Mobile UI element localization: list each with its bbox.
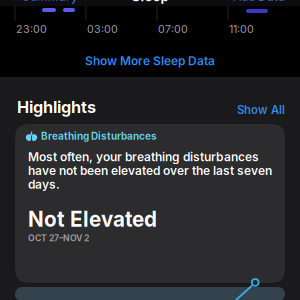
- staticText: Highlights: [17, 98, 96, 116]
- button[interactable]: Add Data: [227, 0, 285, 2]
- staticText: 07:00: [158, 23, 188, 35]
- button[interactable]: Breathing Disturbances: [15, 124, 285, 283]
- staticText: OCT 27–NOV 2: [28, 233, 89, 243]
- button[interactable]: Show All: [237, 100, 285, 114]
- staticText: Sleep: [131, 0, 168, 4]
- staticText: 23:00: [16, 23, 47, 35]
- staticText: Not Elevated: [28, 207, 157, 231]
- staticText: Breathing Disturbances: [41, 130, 157, 142]
- button[interactable]: [15, 287, 285, 300]
- staticText: Add Data: [233, 0, 285, 3]
- staticText: Show More Sleep Data: [85, 54, 215, 68]
- button[interactable]: Summary: [14, 0, 84, 2]
- staticText: 03:00: [87, 23, 118, 35]
- staticText: Most often, your breathing disturbances …: [28, 150, 272, 191]
- staticText: Summary: [22, 0, 78, 3]
- staticText: 11:00: [229, 23, 254, 35]
- button[interactable]: Show More Sleep Data: [0, 50, 300, 72]
- staticText: Show All: [237, 103, 285, 116]
